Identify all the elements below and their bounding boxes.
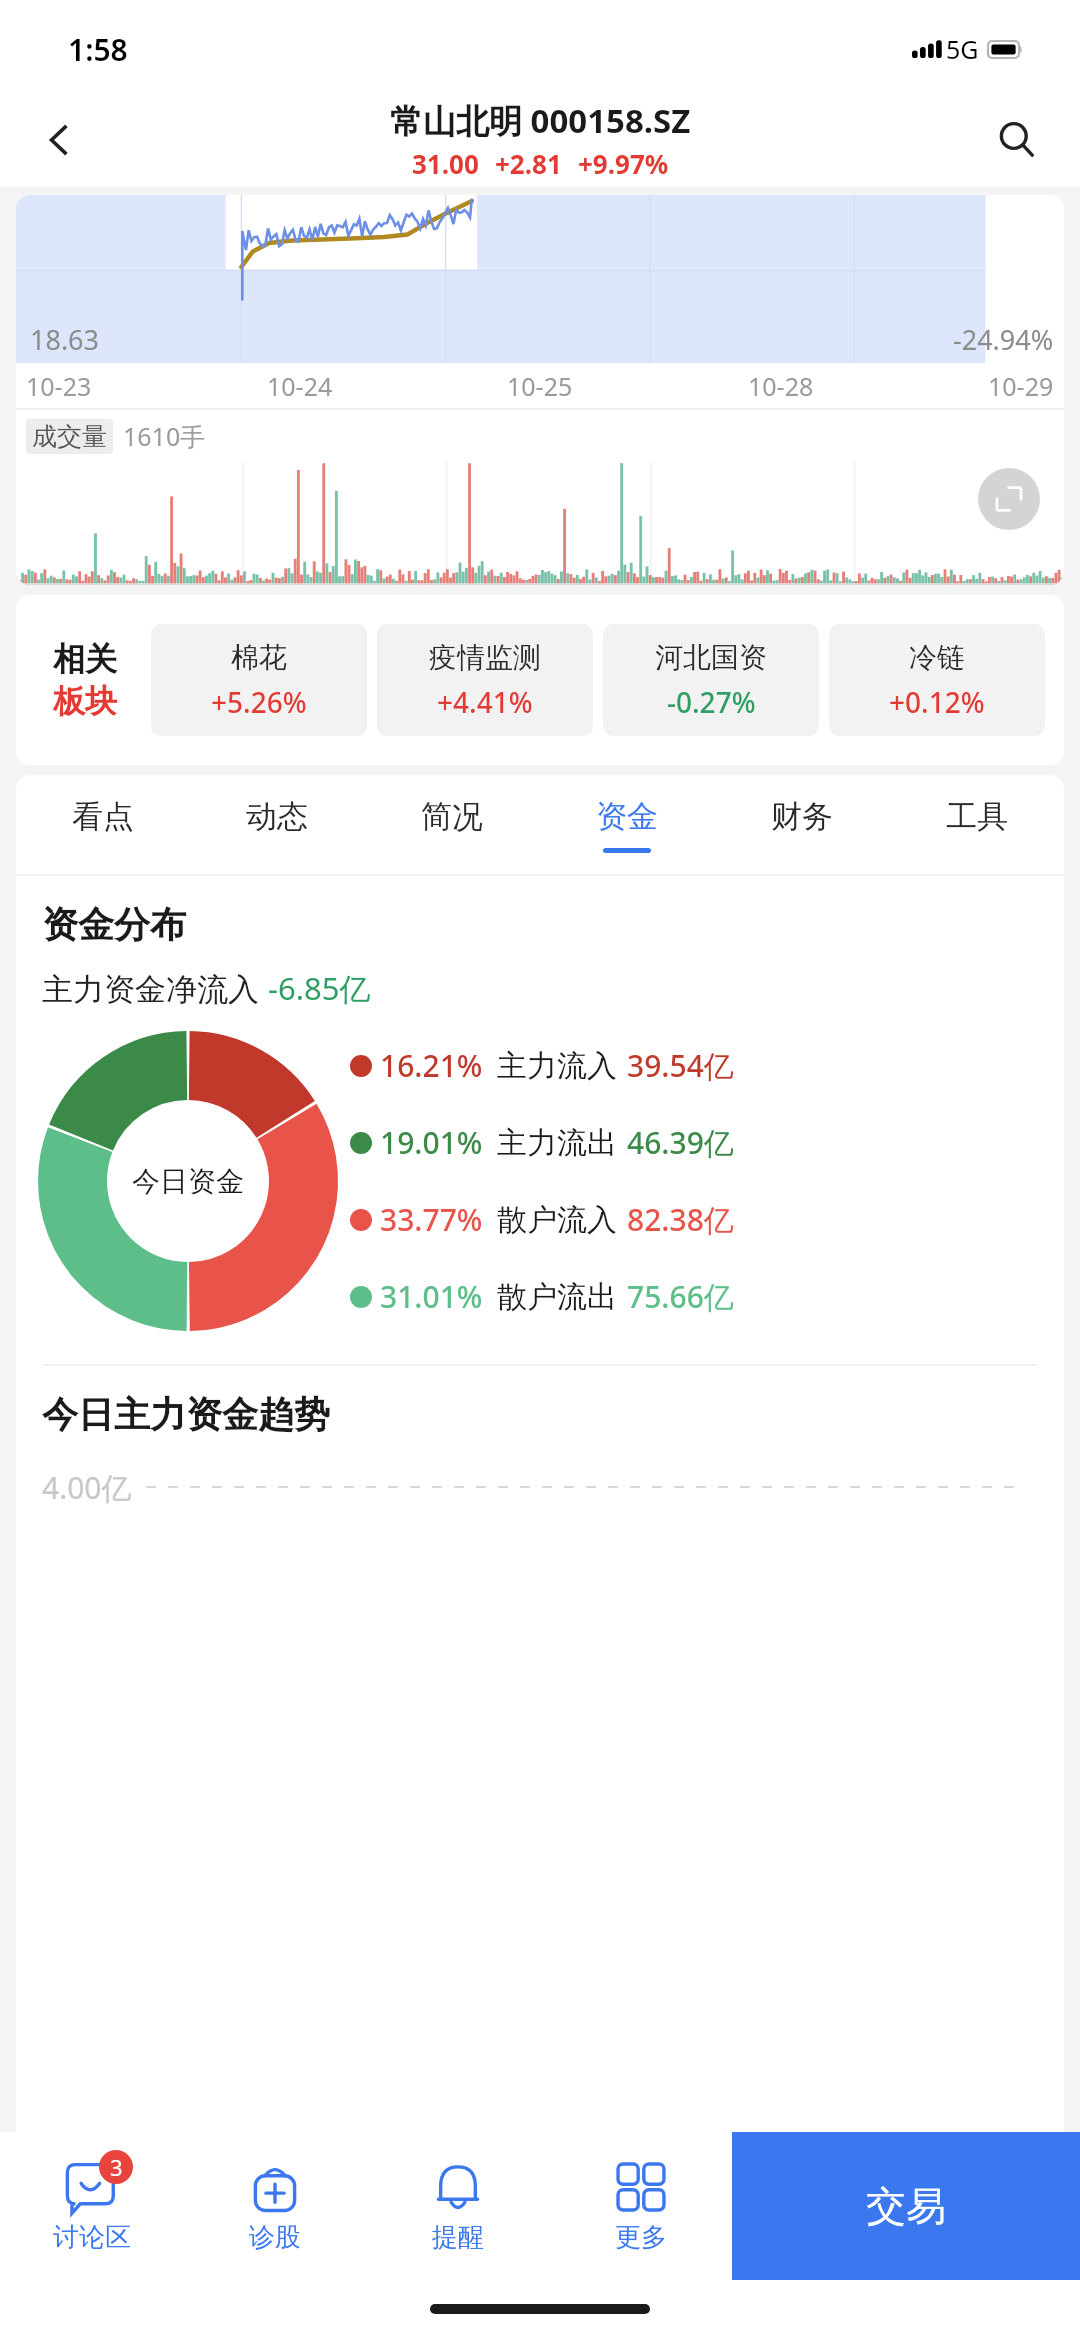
staticText: 交易 [866, 2181, 946, 2231]
staticText: +9.97% [578, 146, 669, 181]
staticText: 相关 [53, 639, 117, 679]
button[interactable]: 提醒 [366, 2132, 549, 2280]
staticText: 19.01% [380, 1122, 483, 1163]
button[interactable]: Fullscreen chart [978, 468, 1040, 530]
staticText: 5G [946, 32, 979, 66]
staticText: 动态 [246, 797, 308, 836]
staticText: 1:58 [68, 29, 128, 70]
staticText: 更多 [615, 2221, 667, 2254]
button[interactable]: 棉花 [151, 624, 367, 736]
staticText: 主力流出 [497, 1124, 617, 1162]
staticText: 成交量 [32, 421, 107, 452]
staticText: 主力流入 [497, 1047, 617, 1085]
button[interactable]: 疫情监测 [377, 624, 593, 736]
button[interactable]: 交易 [732, 2132, 1080, 2280]
staticText: 主力资金净流入 [42, 967, 268, 1009]
staticText: 棉花 [231, 640, 287, 675]
staticText: 疫情监测 [429, 640, 541, 675]
staticText: 39.54亿 [627, 1045, 734, 1086]
staticText: 河北国资 [655, 640, 767, 675]
staticText: 财务 [771, 797, 833, 836]
staticText: 10-25 [507, 369, 573, 403]
staticText: 资金分布 [42, 902, 186, 947]
staticText: +4.41% [437, 683, 533, 721]
staticText: 散户流入 [497, 1201, 617, 1239]
staticText: 10-28 [748, 369, 814, 403]
button[interactable]: Back [20, 101, 98, 179]
staticText: 4.00亿 [42, 1467, 132, 1508]
staticText: 今日资金 [132, 1164, 244, 1199]
staticText: 简况 [421, 797, 483, 836]
staticText: 31.00 [412, 146, 479, 181]
staticText: 31.01% [380, 1276, 483, 1317]
staticText: -6.85亿 [268, 967, 371, 1009]
staticText: 10-24 [267, 369, 333, 403]
staticText: +0.12% [889, 683, 985, 721]
staticText: 提醒 [432, 2221, 484, 2254]
button[interactable]: 财务 [714, 775, 889, 875]
button[interactable]: Search [978, 101, 1056, 179]
staticText: +2.81 [495, 146, 562, 181]
button[interactable]: 看点 [16, 775, 190, 875]
button[interactable]: 简况 [364, 775, 539, 875]
staticText: 冷链 [909, 640, 965, 675]
staticText: 工具 [946, 797, 1008, 836]
staticText: 33.77% [380, 1199, 483, 1240]
staticText: 3 [110, 2152, 123, 2182]
button[interactable]: 资金 [539, 775, 714, 875]
staticText: 10-23 [26, 369, 92, 403]
button[interactable]: 动态 [190, 775, 364, 875]
staticText: 常山北明 000158.SZ [390, 98, 691, 143]
button[interactable]: 工具 [889, 775, 1064, 875]
staticText: 讨论区 [53, 2221, 131, 2254]
staticText: 板块 [53, 681, 117, 721]
staticText: -0.27% [667, 683, 756, 721]
staticText: 今日主力资金趋势 [42, 1392, 330, 1437]
staticText: 16.21% [380, 1045, 483, 1086]
button[interactable]: 河北国资 [603, 624, 819, 736]
button[interactable]: 冷链 [829, 624, 1045, 736]
staticText: 看点 [72, 797, 134, 836]
staticText: 1610手 [123, 419, 206, 453]
staticText: 10-29 [988, 369, 1054, 403]
staticText: 资金 [596, 797, 658, 836]
staticText: 散户流出 [497, 1278, 617, 1316]
staticText: 18.63 [30, 321, 100, 358]
staticText: +5.26% [211, 683, 307, 721]
button[interactable]: 3 [0, 2132, 183, 2280]
staticText: 75.66亿 [627, 1276, 734, 1317]
staticText: 46.39亿 [627, 1122, 734, 1163]
button[interactable]: 更多 [549, 2132, 732, 2280]
button[interactable]: 诊股 [183, 2132, 366, 2280]
staticText: -24.94% [953, 321, 1054, 358]
staticText: 82.38亿 [627, 1199, 734, 1240]
staticText: 诊股 [249, 2221, 301, 2254]
